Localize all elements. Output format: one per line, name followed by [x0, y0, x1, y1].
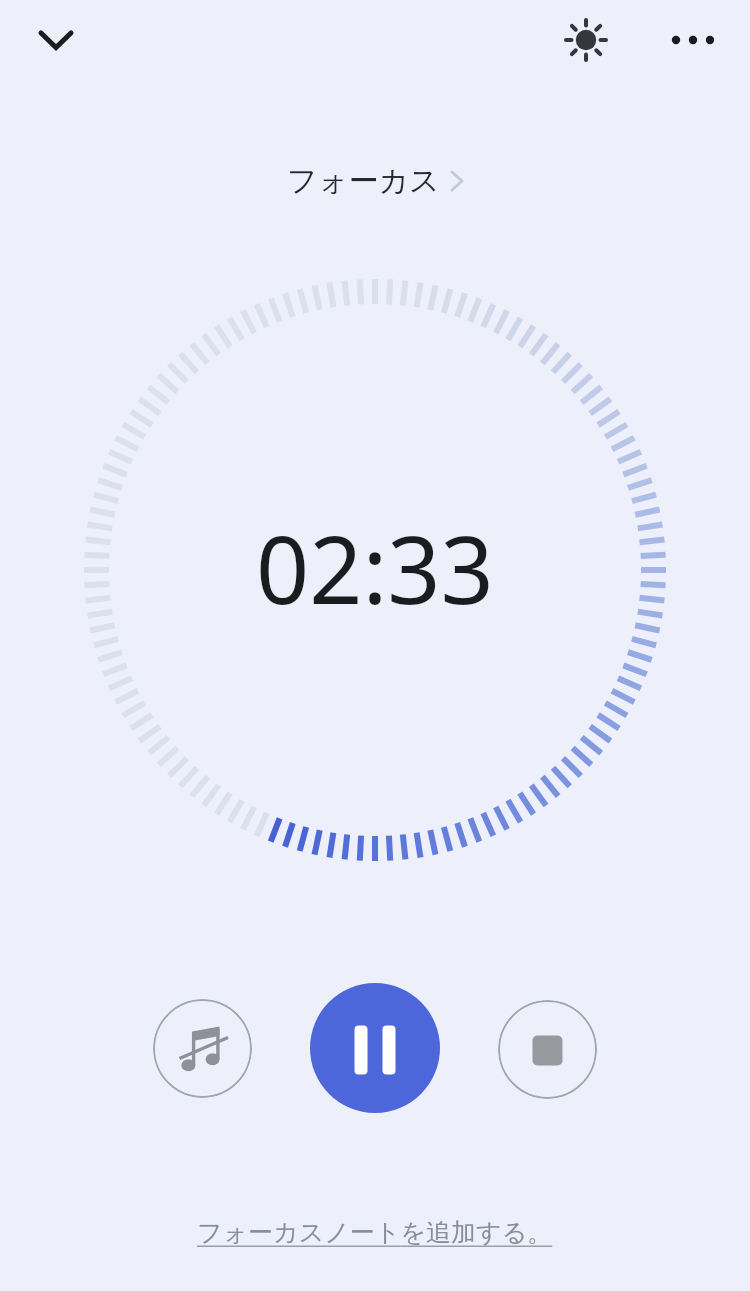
button[interactable] — [310, 983, 440, 1113]
staticText: 02:33 — [256, 505, 494, 632]
button[interactable]: フォーカスノートを追加する。 — [197, 1202, 553, 1262]
button[interactable] — [558, 12, 614, 68]
staticText: フォーカスノートを追加する。 — [197, 1217, 553, 1248]
button[interactable] — [28, 14, 84, 64]
staticText: フォーカス — [287, 162, 440, 200]
button[interactable]: フォーカス — [260, 156, 490, 206]
button[interactable] — [498, 1000, 597, 1099]
button[interactable] — [660, 18, 724, 62]
button[interactable] — [153, 999, 252, 1098]
